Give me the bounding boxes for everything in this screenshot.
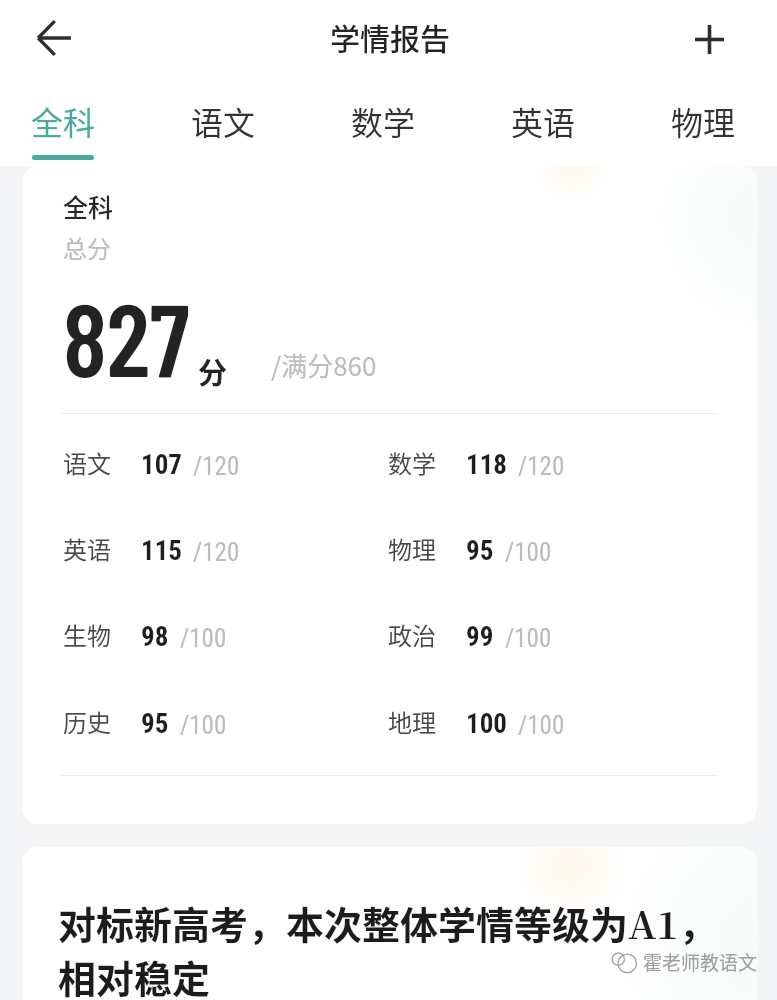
button[interactable]: 全科	[22, 166, 757, 824]
staticText: 物理	[671, 98, 736, 144]
button[interactable]: 英语	[463, 85, 623, 166]
button[interactable]: Add	[681, 11, 737, 67]
staticText: 95	[466, 535, 494, 567]
staticText: /120	[518, 452, 565, 481]
button[interactable]: Back	[26, 10, 82, 66]
button[interactable]: 语文	[143, 85, 303, 166]
staticText: 语文	[191, 98, 256, 144]
staticText: 全科	[31, 98, 96, 144]
staticText: 115	[141, 535, 182, 567]
button[interactable]: 数学	[303, 85, 463, 166]
staticText: /120	[193, 538, 240, 567]
staticText: 107	[141, 449, 182, 481]
staticText: /满分860	[271, 346, 377, 384]
staticText: 827	[63, 276, 190, 397]
staticText: 118	[466, 449, 507, 481]
staticText: /100	[180, 711, 227, 740]
staticText: 99	[466, 621, 494, 653]
staticText: 95	[141, 708, 169, 740]
staticText: /100	[505, 538, 552, 567]
button[interactable]: 全科	[0, 85, 143, 166]
staticText: 英语	[63, 531, 111, 566]
staticText: 相对稳定	[58, 949, 211, 1000]
staticText: 数学	[388, 445, 436, 480]
staticText: 分	[198, 350, 228, 392]
staticText: 对标新高考，本次整体学情等级为A1，	[58, 895, 717, 950]
button[interactable]: 物理	[623, 85, 777, 166]
staticText: 总分	[63, 230, 111, 265]
staticText: 100	[466, 708, 507, 740]
staticText: /100	[505, 624, 552, 653]
staticText: 地理	[388, 704, 436, 739]
staticText: 历史	[63, 704, 111, 739]
staticText: 生物	[63, 617, 111, 652]
staticText: 数学	[351, 98, 416, 144]
staticText: 98	[141, 621, 169, 653]
staticText: 霍老师教语文	[643, 948, 757, 976]
staticText: 全科	[63, 188, 114, 224]
staticText: 学情报告	[330, 15, 450, 58]
staticText: 物理	[388, 531, 436, 566]
staticText: 政治	[388, 617, 436, 652]
staticText: 英语	[511, 98, 576, 144]
button[interactable]: 对标新高考，本次整体学情等级为A1，	[22, 847, 757, 1000]
staticText: /120	[193, 452, 240, 481]
staticText: /100	[518, 711, 565, 740]
staticText: /100	[180, 624, 227, 653]
staticText: 语文	[63, 445, 111, 480]
